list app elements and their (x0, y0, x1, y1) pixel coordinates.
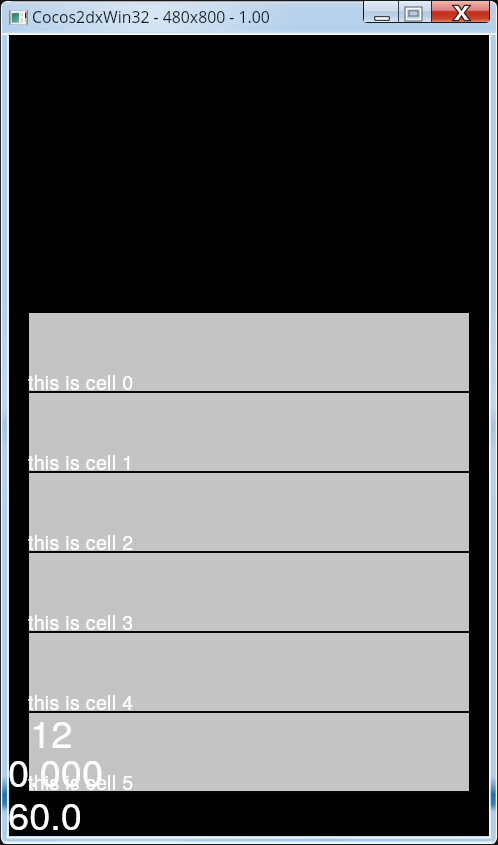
staticText: this is cell 0 (28, 367, 134, 395)
button[interactable]: Close (432, 1, 489, 22)
button[interactable]: Minimize (364, 1, 398, 22)
button[interactable]: this is cell 2 (29, 473, 469, 553)
staticText: this is cell 4 (28, 687, 134, 715)
button[interactable]: this is cell 1 (29, 393, 469, 473)
button[interactable]: this is cell 5 (29, 713, 469, 793)
staticText: this is cell 1 (28, 447, 134, 475)
staticText: 0.000 (8, 743, 104, 797)
staticText: 12 (30, 704, 73, 758)
staticText: 60.0 (8, 786, 82, 840)
staticText: this is cell 2 (28, 527, 134, 555)
button[interactable]: Maximize (399, 1, 431, 22)
staticText: this is cell 5 (28, 767, 134, 795)
button[interactable]: this is cell 3 (29, 553, 469, 633)
staticText: this is cell 3 (28, 607, 134, 635)
button[interactable]: this is cell 0 (29, 313, 469, 393)
button[interactable]: this is cell 4 (29, 633, 469, 713)
staticText: Cocos2dxWin32 - 480x800 - 1.00 (32, 6, 270, 28)
